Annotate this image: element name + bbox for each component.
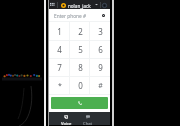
- button[interactable]: 9: [90, 59, 110, 76]
- button[interactable]: Switch account: [93, 0, 99, 9]
- button[interactable]: 4: [49, 41, 70, 58]
- button[interactable]: 3: [90, 22, 110, 40]
- staticText: Enter phone #: [54, 13, 87, 20]
- button[interactable]: Chat: [77, 112, 99, 125]
- button[interactable]: *: [49, 77, 70, 94]
- staticText: *: [58, 81, 62, 91]
- button[interactable]: 8: [70, 59, 90, 76]
- button[interactable]: 5: [70, 41, 90, 58]
- staticText: nolan_jack: [68, 3, 91, 9]
- staticText: 4: [57, 44, 62, 55]
- button[interactable]: Google apps: [49, 0, 56, 9]
- button[interactable]: Call: [51, 97, 108, 109]
- button[interactable]: 1: [49, 22, 70, 40]
- staticText: 0: [78, 80, 83, 91]
- staticText: 3: [98, 26, 103, 37]
- staticText: 6: [98, 44, 103, 55]
- button[interactable]: 7: [49, 59, 70, 76]
- staticText: Voice: [61, 121, 72, 125]
- staticText: #: [98, 81, 103, 91]
- button[interactable]: 2: [70, 22, 90, 40]
- button[interactable]: 0: [70, 77, 90, 94]
- button[interactable]: Add contact: [99, 9, 108, 22]
- staticText: 7: [57, 62, 62, 73]
- staticText: Chat: [83, 121, 93, 125]
- button[interactable]: Account: [102, 3, 107, 8]
- staticText: 8: [78, 62, 83, 73]
- button[interactable]: Voice: [55, 112, 77, 125]
- staticText: 5: [78, 44, 83, 55]
- staticText: 2: [78, 26, 83, 37]
- button[interactable]: #: [90, 77, 110, 94]
- button[interactable]: 6: [90, 41, 110, 58]
- staticText: 9: [98, 62, 103, 73]
- staticText: 1: [57, 26, 62, 37]
